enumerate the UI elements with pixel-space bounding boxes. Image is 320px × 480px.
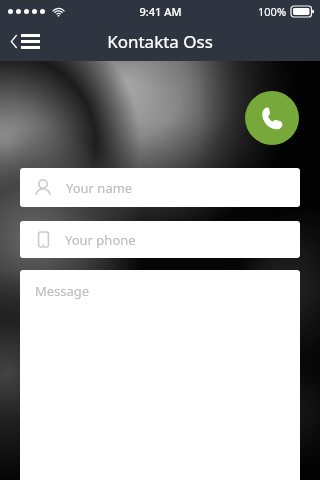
staticText: 9:41 AM: [139, 4, 182, 19]
button[interactable]: Your name: [20, 168, 300, 207]
staticText: Kontakta Oss: [107, 30, 213, 53]
staticText: 100%: [258, 4, 287, 19]
button[interactable]: Your phone: [20, 221, 300, 258]
staticText: Message: [35, 282, 90, 300]
staticText: Your name: [66, 179, 133, 197]
staticText: Your phone: [65, 231, 136, 249]
button[interactable]: Menu: [0, 22, 52, 61]
button[interactable]: Call: [245, 91, 299, 145]
button[interactable]: Message: [20, 270, 300, 480]
